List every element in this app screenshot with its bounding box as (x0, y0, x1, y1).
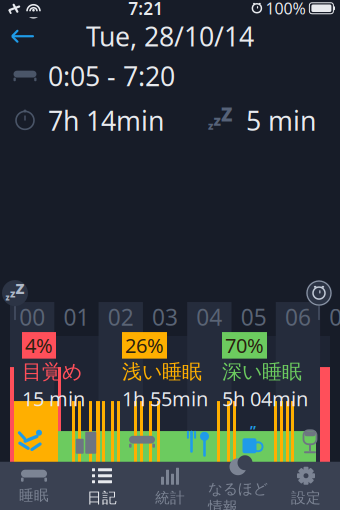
staticText: z (5, 292, 9, 303)
staticText: 深い睡眠 (222, 360, 302, 384)
button[interactable]: Coffee (226, 422, 282, 462)
staticText: Z (221, 102, 232, 127)
staticText: 統計 (155, 489, 185, 507)
staticText: 70% (225, 332, 264, 359)
staticText: なるほど情報 (208, 480, 268, 510)
button[interactable]: Alcohol (282, 422, 338, 462)
staticText: 4% (25, 332, 53, 359)
staticText: 7h 14min (48, 103, 164, 138)
staticText: 05 (241, 302, 267, 332)
staticText: 06 (285, 302, 311, 332)
staticText: 0:05 - 7:20 (48, 58, 175, 94)
button[interactable]: Sport (2, 422, 58, 462)
staticText: 目覚め (22, 360, 82, 384)
button[interactable]: 統計 (136, 463, 204, 510)
staticText: z (213, 110, 220, 130)
button[interactable]: なるほど情報 (204, 463, 272, 510)
staticText: ” (250, 422, 256, 440)
staticText: 浅い睡眠 (122, 360, 202, 384)
button[interactable]: 設定 (272, 463, 340, 510)
staticText: 07 (329, 302, 340, 332)
staticText: z (10, 286, 15, 300)
staticText: 日記 (87, 489, 117, 507)
staticText: Z (15, 278, 24, 298)
button[interactable]: 日記 (68, 463, 136, 510)
staticText: 100% (265, 0, 305, 19)
button[interactable]: Back (0, 19, 46, 53)
button[interactable]: 睡眠 (0, 463, 68, 510)
staticText: 02 (108, 302, 134, 332)
staticText: 設定 (291, 489, 321, 507)
staticText: z (208, 119, 213, 133)
staticText: 04 (196, 302, 222, 332)
button[interactable]: Meal (170, 422, 226, 462)
staticText: 1h 55min (122, 385, 208, 412)
staticText: 7:21 (128, 0, 163, 20)
staticText: 00 (19, 302, 45, 332)
staticText: 26% (125, 332, 164, 359)
staticText: 03 (152, 302, 178, 332)
staticText: 睡眠 (19, 486, 49, 504)
staticText: Tue, 28/10/14 (86, 18, 254, 54)
button[interactable]: Nap (114, 422, 170, 462)
staticText: 5h 04min (222, 385, 308, 412)
staticText: 5 min (246, 103, 316, 138)
staticText: 15 min (22, 385, 85, 412)
button[interactable]: Work (58, 422, 114, 462)
staticText: 01 (63, 302, 89, 332)
